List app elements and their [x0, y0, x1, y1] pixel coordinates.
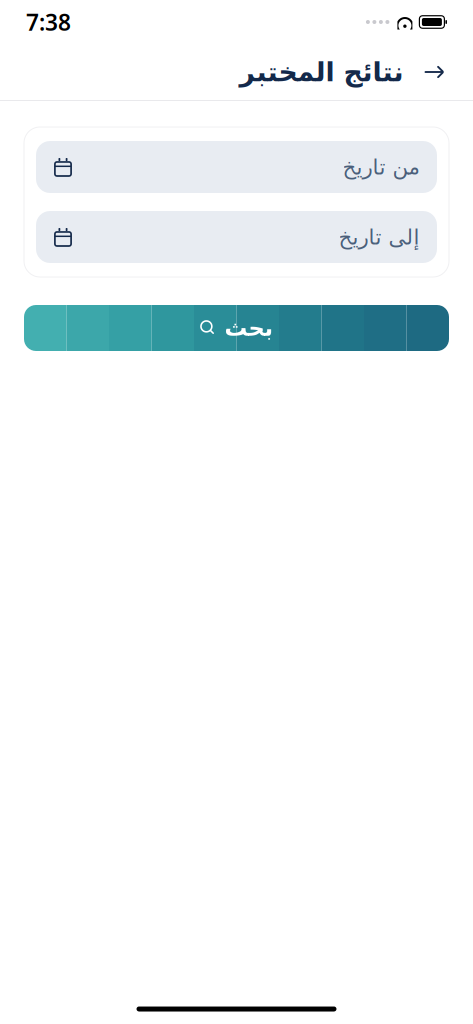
staticText: من تاريخ [342, 155, 419, 179]
staticText: إلى تاريخ [338, 225, 419, 249]
staticText: 7:38 [26, 7, 71, 37]
button[interactable]: إلى تاريخ [36, 211, 437, 263]
staticText: نتائج المختبر [239, 57, 403, 87]
button[interactable]: بحث [24, 305, 449, 351]
button[interactable]: Back [417, 55, 451, 89]
button[interactable]: من تاريخ [36, 141, 437, 193]
staticText: بحث [224, 315, 273, 341]
